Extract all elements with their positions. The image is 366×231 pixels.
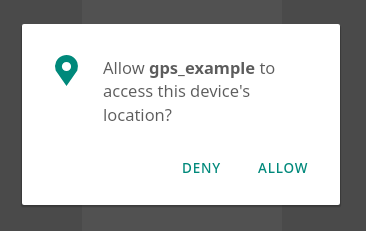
staticText: ALLOW [258,159,309,177]
staticText: DENY [182,159,221,177]
button[interactable]: ALLOW [246,150,321,186]
staticText: Allow gps_example to access this device'… [103,56,308,126]
button[interactable]: DENY [170,150,233,186]
other: Location [55,55,78,86]
